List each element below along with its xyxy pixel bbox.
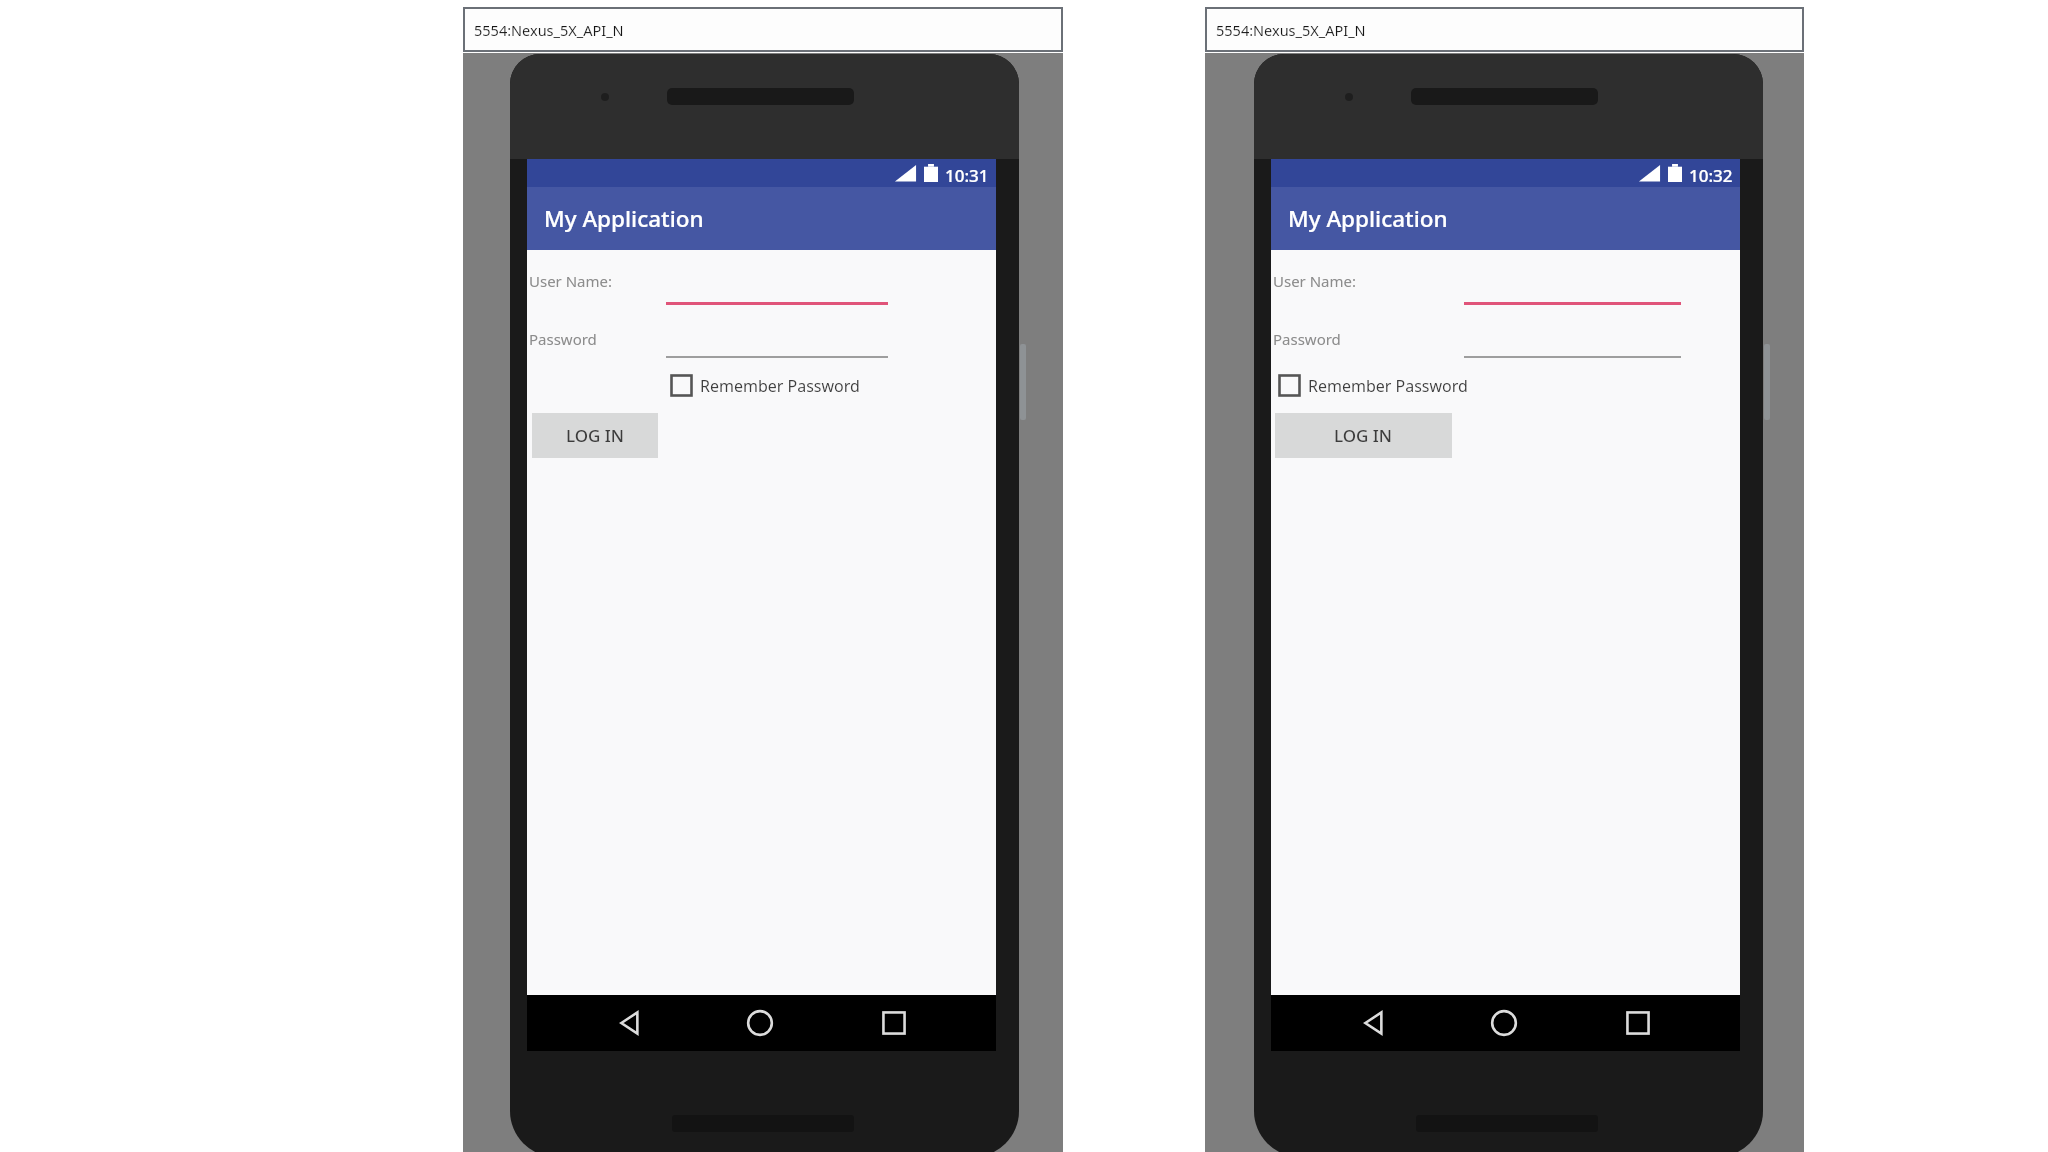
button[interactable]: Remember Password	[670, 374, 860, 397]
button[interactable]: LOG IN	[532, 413, 658, 458]
staticText: My Application	[544, 203, 704, 234]
staticText: Remember Password	[1308, 375, 1468, 397]
staticText: Password	[1273, 329, 1341, 349]
staticText: 10:32	[1689, 164, 1733, 187]
staticText: User Name:	[529, 271, 613, 291]
staticText: 5554:Nexus_5X_API_N	[1216, 20, 1366, 40]
staticText: User Name:	[1273, 271, 1357, 291]
button[interactable]: Back	[1358, 1007, 1390, 1039]
staticText: LOG IN	[1334, 424, 1393, 447]
staticText: 5554:Nexus_5X_API_N	[474, 20, 624, 40]
staticText: My Application	[1288, 203, 1448, 234]
staticText: Password	[529, 329, 597, 349]
staticText: Remember Password	[700, 375, 860, 397]
button[interactable]: Home	[744, 1007, 776, 1039]
staticText: LOG IN	[566, 424, 625, 447]
button[interactable]: Home	[1488, 1007, 1520, 1039]
button[interactable]: Recent apps	[1622, 1007, 1654, 1039]
button[interactable]: Remember Password	[1278, 374, 1468, 397]
staticText: 10:31	[945, 164, 989, 187]
button[interactable]: Back	[614, 1007, 646, 1039]
button[interactable]: LOG IN	[1275, 413, 1452, 458]
button[interactable]: Recent apps	[878, 1007, 910, 1039]
